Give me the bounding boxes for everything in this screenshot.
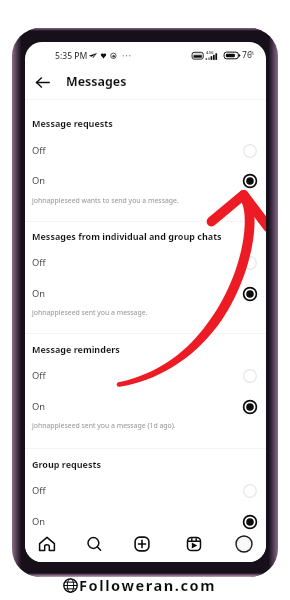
button[interactable]: Back [29,69,55,95]
staticText: johnappleseed wants to send you a messag… [32,196,179,205]
staticText: Messages from individual and group chats [32,230,222,242]
staticText: johnappleseed sent you a message (1d ago… [32,421,176,430]
staticText: Group requests [32,458,101,470]
button[interactable]: Profile [222,529,266,559]
staticText: 5:35 PM [55,50,88,62]
button[interactable]: Off [25,476,266,506]
staticText: 4.5G [206,50,214,55]
button[interactable]: On [25,392,266,422]
staticText: On [32,515,46,528]
button[interactable]: Off [25,136,266,166]
staticText: 76 [242,49,252,61]
staticText: johnappleseed sent you a message. [32,308,148,317]
staticText: Message reminders [32,343,120,355]
staticText: Off [32,484,46,497]
button[interactable]: Off [25,361,266,391]
staticText: Message requests [32,117,113,129]
staticText: On [32,287,46,300]
staticText: On [32,174,46,187]
staticText: Followeran.com [79,575,217,595]
staticText: On [32,400,46,413]
staticText: Off [32,256,46,269]
button[interactable]: Search [72,529,116,559]
staticText: % [250,50,254,56]
button[interactable]: Create [120,529,164,559]
staticText: Off [32,369,46,382]
button[interactable]: Home [25,529,69,559]
button[interactable]: On [25,279,266,309]
button[interactable]: On [25,166,266,196]
staticText: Messages [66,73,127,90]
button[interactable]: On [25,507,266,537]
button[interactable]: Off [25,248,266,278]
staticText: Off [32,144,46,157]
button[interactable]: Reels [172,529,216,559]
